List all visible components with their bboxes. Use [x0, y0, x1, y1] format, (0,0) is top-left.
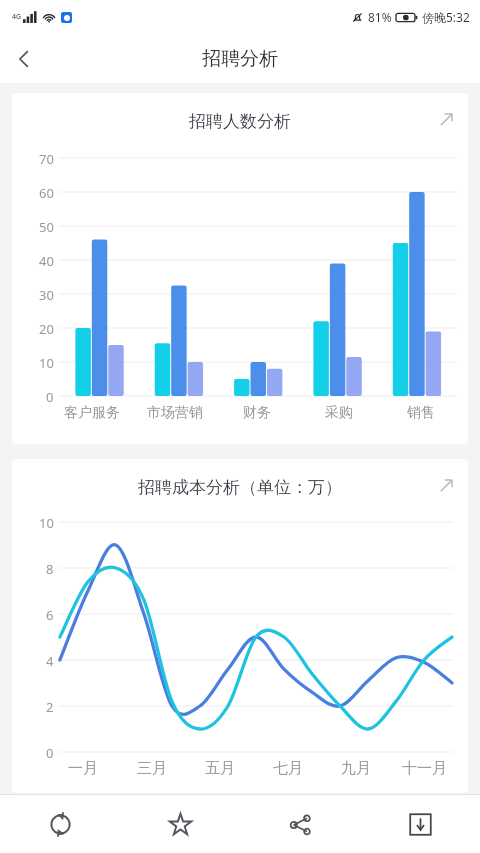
button[interactable]: Refresh	[0, 795, 120, 853]
staticText: 10	[39, 354, 54, 370]
staticText: 60	[39, 184, 54, 200]
staticText: 招聘人数分析	[189, 111, 291, 132]
staticText: 20	[39, 320, 54, 336]
staticText: 10	[39, 514, 54, 530]
staticText: 40	[39, 252, 54, 268]
staticText: 三月	[137, 759, 167, 778]
staticText: 招聘分析	[202, 47, 278, 71]
staticText: 傍晚5:32	[422, 9, 470, 25]
staticText: 6	[46, 606, 54, 622]
staticText: 4G	[12, 12, 22, 22]
staticText: 七月	[273, 759, 303, 778]
staticText: 81%	[368, 9, 392, 25]
staticText: 客户服务	[64, 404, 120, 422]
staticText: 70	[39, 150, 54, 166]
button[interactable]: Favorite	[120, 795, 240, 853]
staticText: 0	[46, 744, 54, 760]
button[interactable]: Back	[0, 35, 48, 83]
staticText: 招聘成本分析（单位：万）	[138, 477, 342, 498]
staticText: 采购	[325, 404, 353, 422]
staticText: 十一月	[402, 759, 447, 778]
staticText: 30	[39, 286, 54, 302]
button[interactable]: Share	[240, 795, 360, 853]
staticText: 2	[46, 698, 54, 714]
button[interactable]: Download	[360, 795, 480, 853]
staticText: 50	[39, 218, 54, 234]
staticText: 市场营销	[147, 404, 203, 422]
staticText: 九月	[341, 759, 371, 778]
staticText: 销售	[407, 404, 435, 422]
staticText: 4	[46, 652, 54, 668]
staticText: 财务	[243, 404, 271, 422]
button[interactable]: 招聘成本分析（单位：万）	[12, 459, 468, 793]
staticText: 五月	[205, 759, 235, 778]
staticText: 0	[46, 388, 54, 404]
button[interactable]: Expand chart	[430, 469, 462, 501]
button[interactable]: Expand chart	[430, 103, 462, 135]
staticText: 一月	[68, 759, 98, 778]
staticText: 8	[46, 560, 54, 576]
button[interactable]: 招聘人数分析	[12, 93, 468, 444]
